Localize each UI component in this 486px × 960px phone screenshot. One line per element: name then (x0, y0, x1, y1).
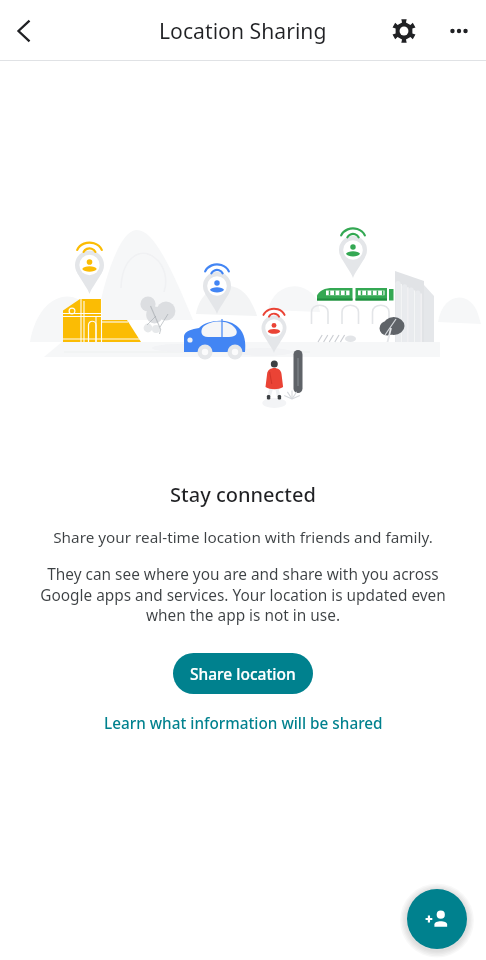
button[interactable]: Settings (387, 7, 435, 55)
staticText: Share location (190, 663, 296, 684)
staticText: Location Sharing (159, 16, 327, 45)
button[interactable]: Learn what information will be shared (96, 707, 391, 740)
button[interactable]: Share location (173, 653, 313, 694)
staticText: Share your real-time location with frien… (0, 527, 486, 548)
staticText: They can see where you are and share wit… (22, 564, 464, 625)
button[interactable]: More options (435, 7, 483, 55)
button[interactable]: Add person (407, 889, 467, 949)
staticText: Learn what information will be shared (104, 713, 383, 734)
staticText: Stay connected (0, 481, 486, 508)
button[interactable]: Back (0, 7, 48, 55)
